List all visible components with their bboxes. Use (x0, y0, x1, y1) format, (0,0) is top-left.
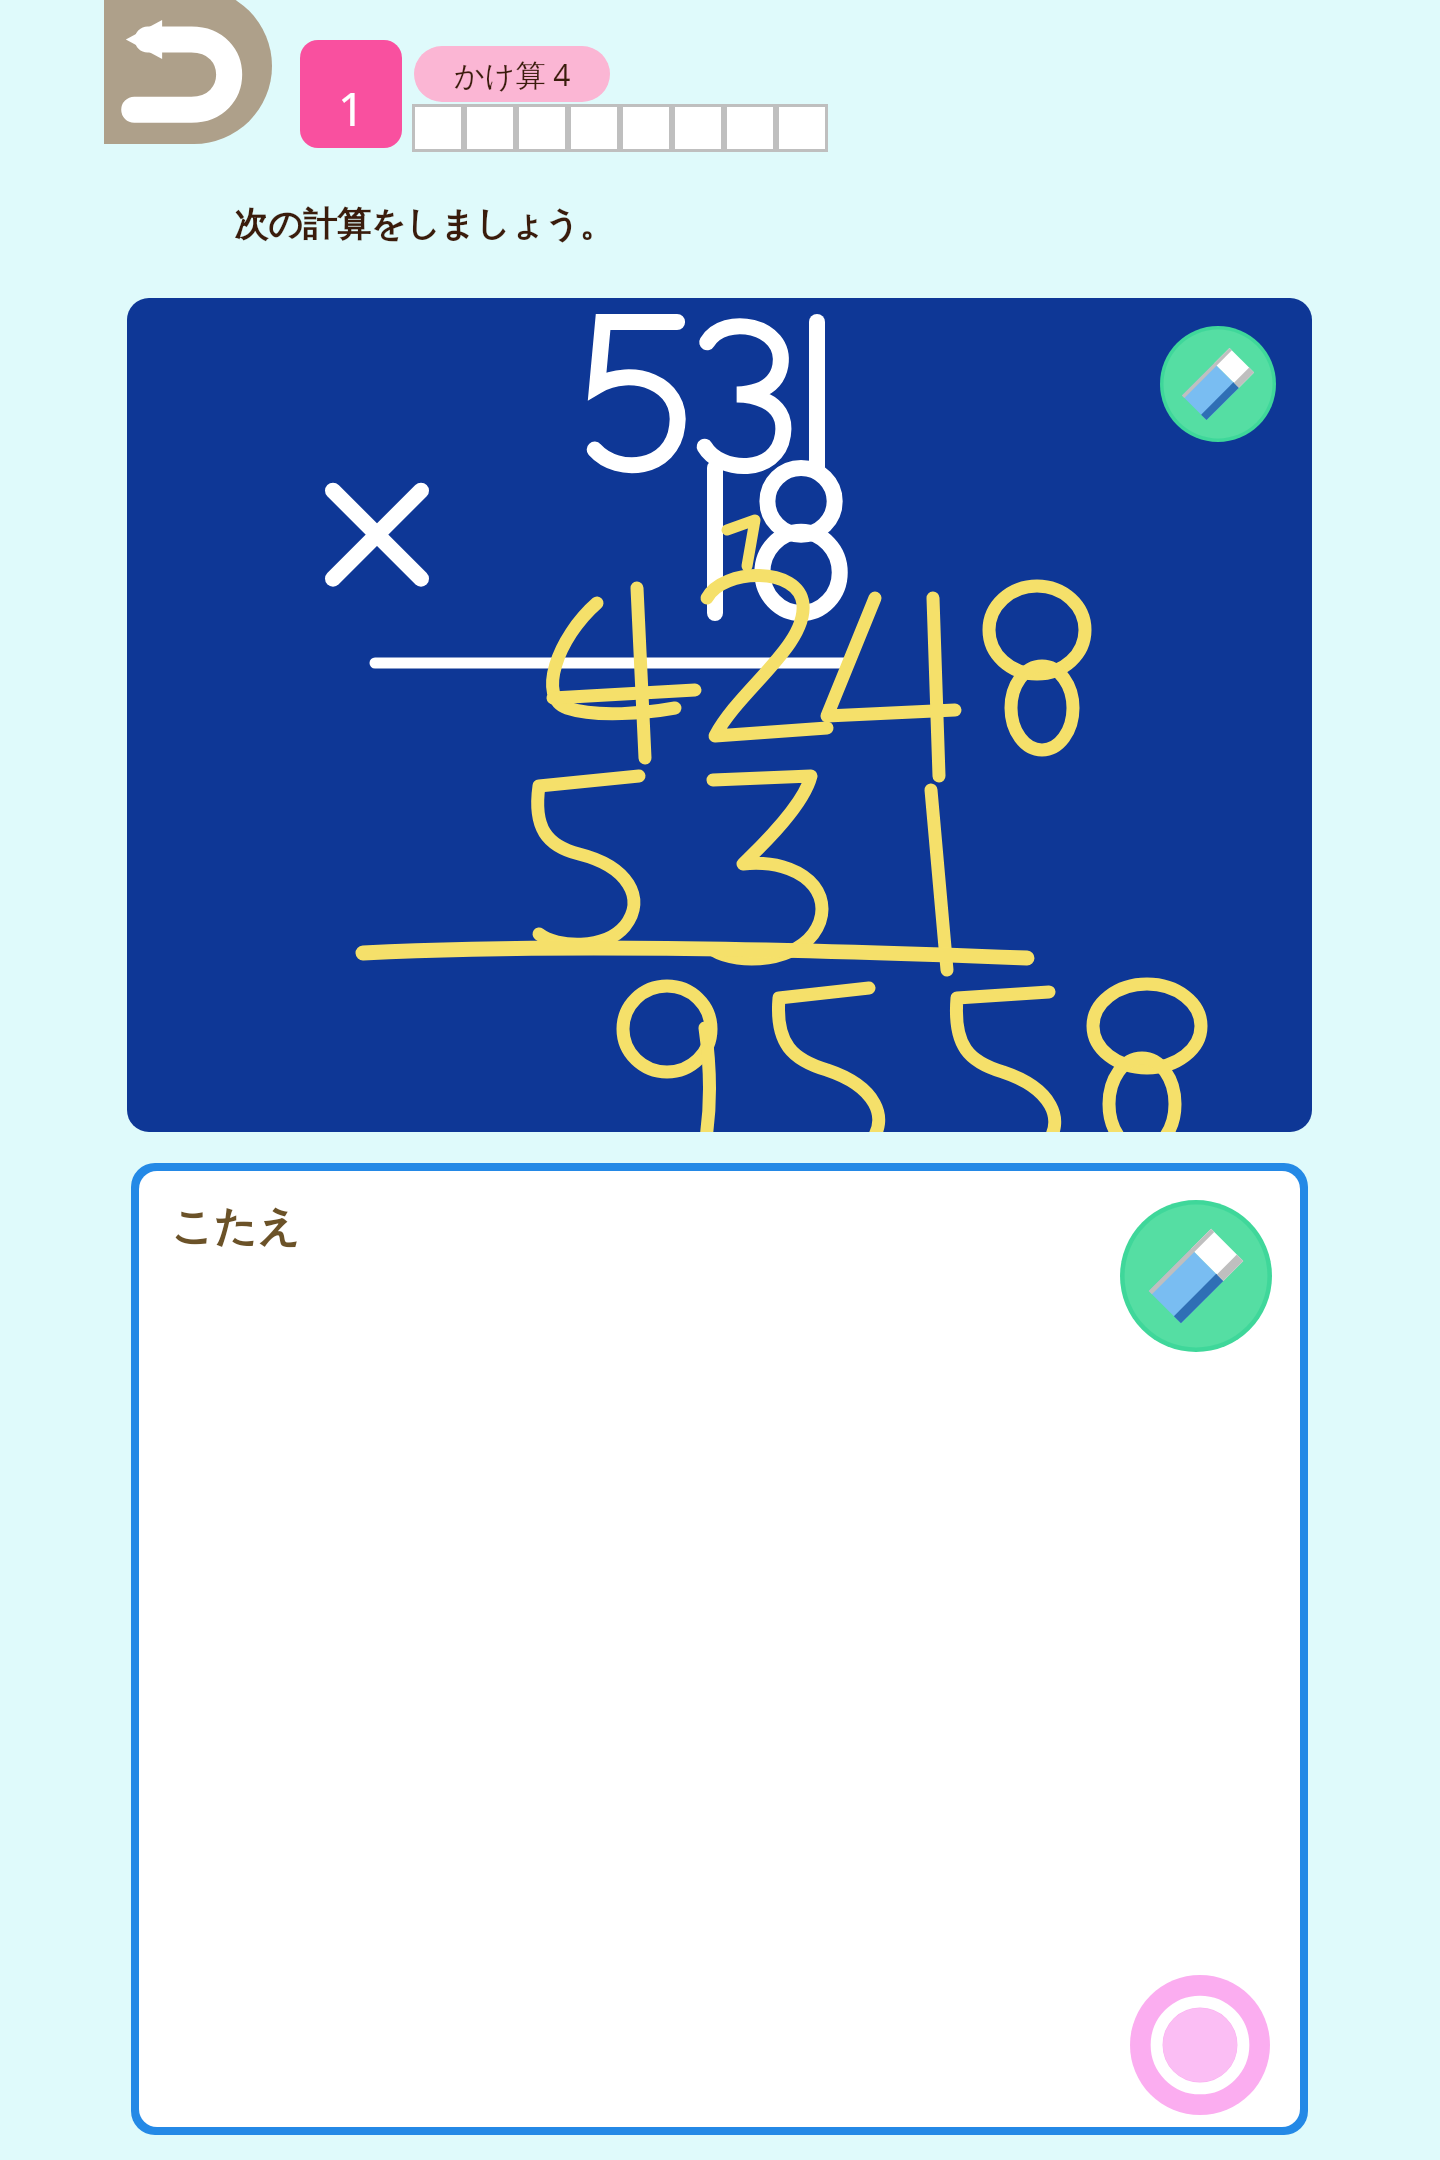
button[interactable]: かけ算 4 (414, 46, 610, 102)
button[interactable]: Eraser (1160, 326, 1276, 442)
staticText: 1 (338, 77, 365, 140)
button[interactable]: Eraser (1120, 1200, 1272, 1352)
button[interactable]: こたえ (139, 1171, 1300, 2127)
button[interactable]: 1 (300, 40, 402, 148)
button[interactable]: Pen (1130, 1975, 1270, 2115)
button[interactable]: Back (104, 0, 272, 144)
staticText: こたえ (171, 1201, 300, 1254)
staticText: かけ算 4 (454, 54, 571, 95)
staticText: 次の計算をしましょう。 (234, 203, 614, 246)
